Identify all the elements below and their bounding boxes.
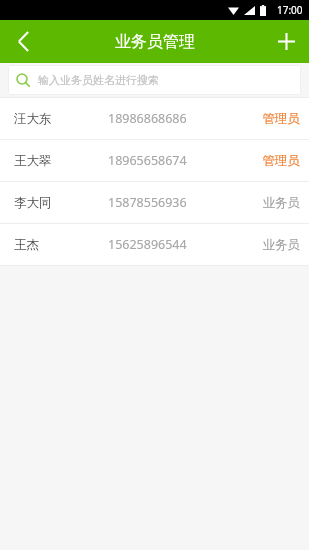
staticText: 18965658674 bbox=[108, 152, 187, 169]
staticText: 汪大东 bbox=[14, 111, 52, 127]
staticText: 15625896544 bbox=[108, 236, 187, 253]
staticText: 18986868686 bbox=[108, 110, 187, 127]
button[interactable]: 李大同 bbox=[0, 182, 309, 223]
staticText: 王大翠 bbox=[14, 153, 52, 169]
button[interactable]: Add bbox=[263, 20, 309, 63]
button[interactable]: 输入业务员姓名进行搜索 bbox=[8, 65, 301, 95]
staticText: 15878556936 bbox=[108, 194, 187, 211]
staticText: 业务员 bbox=[262, 237, 300, 253]
staticText: 管理员 bbox=[262, 111, 300, 127]
staticText: 王杰 bbox=[14, 237, 39, 253]
staticText: 李大同 bbox=[14, 195, 52, 211]
staticText: 业务员 bbox=[262, 195, 300, 211]
staticText: 输入业务员姓名进行搜索 bbox=[38, 73, 159, 87]
staticText: 17:00 bbox=[277, 3, 303, 17]
button[interactable]: 汪大东 bbox=[0, 98, 309, 139]
staticText: 业务员管理 bbox=[115, 32, 195, 52]
staticText: 管理员 bbox=[262, 153, 300, 169]
button[interactable]: Back bbox=[0, 20, 46, 63]
button[interactable]: 王大翠 bbox=[0, 140, 309, 181]
button[interactable]: 王杰 bbox=[0, 224, 309, 265]
